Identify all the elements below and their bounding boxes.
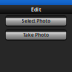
staticText: Select Photo <box>21 18 50 24</box>
button[interactable]: Select Photo <box>5 15 67 27</box>
staticText: Edit <box>31 6 41 13</box>
staticText: Take Photo <box>23 32 49 38</box>
button[interactable]: Take Photo <box>5 29 67 41</box>
